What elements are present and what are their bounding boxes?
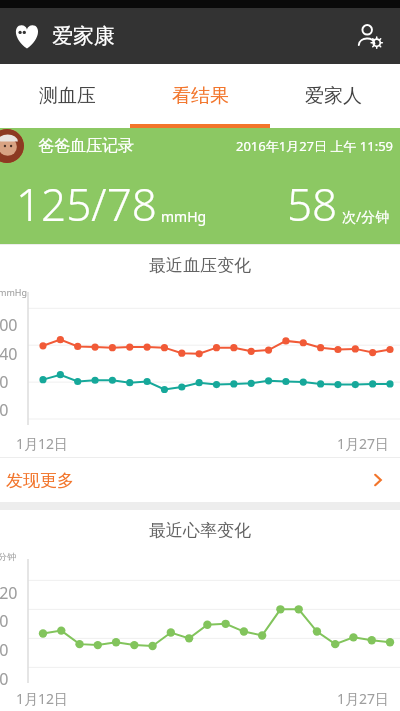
staticText: 2016年1月27日 上午 11:59: [236, 137, 394, 155]
button[interactable]: 发现更多: [0, 458, 400, 502]
staticText: 次/分钟: [342, 207, 390, 226]
staticText: mmHg: [0, 286, 28, 298]
staticText: 60: [0, 639, 9, 661]
button[interactable]: 爱家人: [267, 64, 400, 128]
staticText: 最近心率变化: [149, 520, 251, 541]
staticText: 120: [0, 582, 18, 604]
staticText: 分钟: [0, 551, 16, 562]
staticText: 爱家人: [305, 84, 362, 108]
staticText: 30: [0, 668, 9, 690]
staticText: 爸爸血压记录: [38, 136, 134, 156]
staticText: 1月12日: [16, 434, 69, 453]
button[interactable]: 测血压: [0, 64, 134, 128]
staticText: 90: [0, 610, 9, 632]
staticText: mmHg: [161, 207, 207, 226]
button[interactable]: 看结果: [134, 64, 267, 128]
staticText: 200: [0, 314, 18, 336]
staticText: 140: [0, 343, 18, 365]
staticText: 58: [287, 174, 338, 234]
staticText: 1月27日: [337, 689, 390, 708]
staticText: 最近血压变化: [149, 255, 251, 276]
staticText: 80: [0, 371, 9, 393]
staticText: 发现更多: [6, 470, 74, 491]
staticText: 爱家康: [52, 23, 115, 49]
button[interactable]: 爸爸血压记录: [0, 128, 400, 244]
staticText: 125/78: [16, 174, 157, 234]
staticText: 看结果: [172, 84, 229, 108]
staticText: 1月12日: [16, 689, 69, 708]
staticText: 1月27日: [337, 434, 390, 453]
staticText: 20: [0, 399, 9, 421]
staticText: 测血压: [39, 84, 96, 108]
button[interactable]: Account settings: [352, 18, 388, 54]
